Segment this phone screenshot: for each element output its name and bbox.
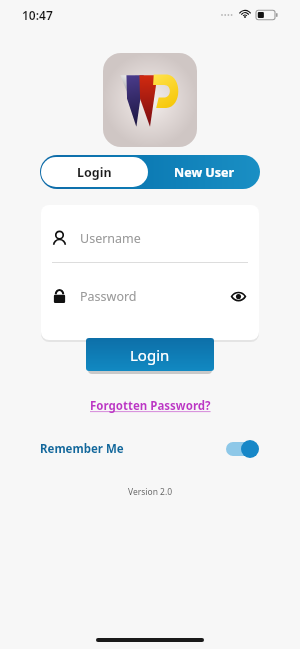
button[interactable]: Username [51,225,249,251]
button[interactable]: Login [41,157,148,187]
staticText: 10:47 [22,7,53,23]
button[interactable]: Remember Me [40,440,260,458]
staticText: Login [130,345,170,365]
staticText: Remember Me [40,441,124,457]
button[interactable]: Show password [227,285,249,307]
button[interactable] [226,440,260,458]
staticText: Version 2.0 [128,486,173,498]
staticText: New User [174,164,235,181]
button[interactable]: Forgotten Password? [90,398,211,414]
staticText: Login [77,164,112,181]
button[interactable]: Login [86,338,214,371]
staticText: Username [80,230,141,247]
button[interactable]: New User [149,155,260,189]
staticText: Password [80,288,137,305]
